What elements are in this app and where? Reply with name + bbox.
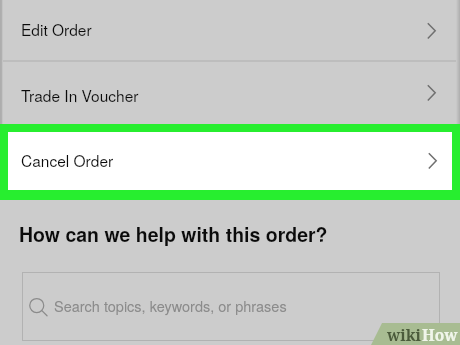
staticText: Search topics, keywords, or phrases [54, 295, 287, 316]
staticText: How can we help with this order? [19, 220, 328, 248]
button[interactable]: Trade In Voucher [0, 62, 460, 124]
staticText: How [422, 324, 458, 345]
staticText: Cancel Order [21, 149, 114, 171]
staticText: Edit Order [21, 18, 92, 40]
staticText: Trade In Voucher [21, 84, 139, 106]
button[interactable]: Search topics, keywords, or phrases [22, 272, 440, 341]
button[interactable]: Edit Order [0, 0, 460, 61]
staticText: wiki [387, 324, 422, 345]
button[interactable]: Cancel Order [8, 132, 452, 190]
